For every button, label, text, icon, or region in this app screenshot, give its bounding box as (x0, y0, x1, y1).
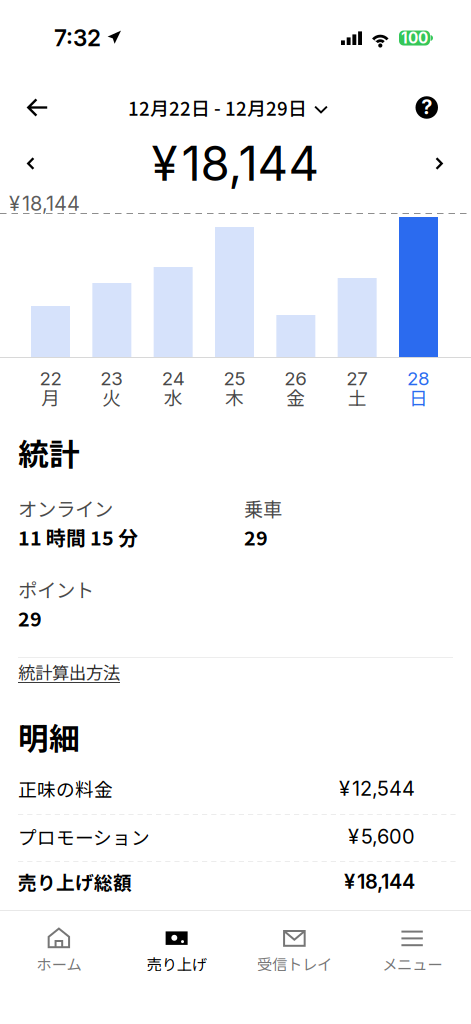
staticText: 11 時間 15 分 (18, 523, 138, 551)
staticText: 12,544 (352, 776, 415, 801)
staticText: 売り上げ (147, 952, 207, 975)
staticText: 金 (286, 383, 305, 410)
staticText: 18,144 (181, 135, 319, 192)
staticText: ¥ (344, 869, 355, 894)
staticText: 乗車 (244, 494, 282, 522)
button[interactable]: ホーム (0, 907, 118, 975)
staticText: ¥ (9, 191, 20, 216)
staticText: 22 (39, 367, 61, 390)
staticText: 28 (407, 367, 430, 390)
staticText: 受信トレイ (257, 952, 332, 975)
staticText: 月 (41, 383, 60, 410)
staticText: 統計 (18, 430, 80, 475)
staticText: プロモーション (18, 823, 150, 850)
staticText: 売り上げ総額 (18, 868, 132, 895)
staticText: 統計算出方法 (18, 659, 120, 685)
staticText: 29 (18, 604, 42, 632)
staticText: 29 (244, 523, 268, 551)
staticText: 100 (401, 29, 428, 47)
staticText: メニュー (382, 952, 442, 975)
staticText: 12月22日 - 12月29日 (128, 94, 307, 121)
staticText: 日 (409, 383, 428, 410)
staticText: ¥ (151, 135, 177, 192)
button[interactable]: 受信トレイ (235, 907, 353, 975)
button[interactable]: Help (404, 87, 449, 128)
staticText: 18,144 (22, 191, 80, 216)
button[interactable]: Previous week (12, 143, 50, 184)
staticText: 木 (225, 383, 244, 410)
staticText: ¥ (339, 776, 350, 801)
staticText: 7:32 (54, 24, 101, 52)
staticText: ¥ (348, 824, 359, 849)
staticText: 5,600 (361, 824, 415, 849)
button[interactable]: 統計算出方法 (18, 658, 120, 692)
staticText: 土 (348, 383, 367, 410)
staticText: 23 (100, 367, 123, 390)
staticText: 24 (162, 367, 185, 390)
staticText: 26 (284, 367, 307, 390)
staticText: 水 (164, 383, 183, 410)
staticText: ホーム (36, 952, 81, 975)
staticText: 明細 (18, 714, 80, 759)
staticText: 火 (102, 383, 121, 410)
button[interactable]: Next week (420, 143, 458, 184)
staticText: オンライン (18, 494, 113, 522)
staticText: 18,144 (357, 869, 415, 894)
staticText: ? (421, 95, 432, 119)
staticText: 正味の料金 (18, 775, 113, 802)
staticText: ポイント (18, 575, 94, 603)
button[interactable]: メニュー (353, 907, 471, 975)
staticText: 27 (346, 367, 368, 390)
button[interactable]: Back (13, 87, 62, 128)
button[interactable]: 売り上げ (118, 907, 236, 975)
staticText: 25 (223, 367, 245, 390)
